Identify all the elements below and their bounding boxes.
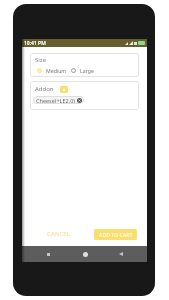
button[interactable]: Large [71, 67, 94, 74]
button[interactable]: Add addon [60, 86, 68, 93]
button[interactable]: Medium [37, 67, 67, 74]
button[interactable]: Back [111, 246, 131, 262]
button[interactable]: Cheese(+LE2.0) [33, 96, 84, 104]
button[interactable]: Recents [38, 246, 58, 262]
staticText: Cheese(+LE2.0) [36, 97, 75, 104]
staticText: Addon [35, 85, 54, 93]
staticText: Medium [46, 67, 67, 74]
staticText: Large [80, 67, 94, 74]
button[interactable]: Home [75, 246, 95, 262]
staticText: CANCEL [47, 230, 70, 238]
button[interactable]: ADD TO CART [94, 229, 137, 240]
button[interactable]: CANCEL [44, 227, 73, 241]
staticText: 10:41 PM [24, 40, 46, 47]
staticText: Size [35, 56, 47, 64]
staticText: ADD TO CART [99, 231, 133, 238]
